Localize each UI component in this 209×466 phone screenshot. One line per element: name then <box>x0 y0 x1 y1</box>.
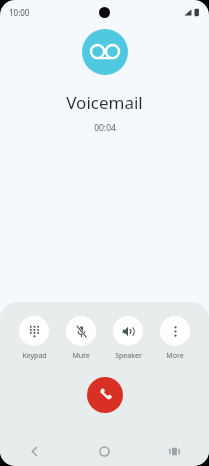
button[interactable]: More options <box>158 316 192 361</box>
button[interactable]: Back <box>0 436 69 466</box>
button[interactable]: Mute <box>64 316 98 361</box>
staticText: Keypad <box>22 351 47 361</box>
button[interactable]: Keypad <box>17 316 51 361</box>
staticText: Mute <box>72 351 90 361</box>
staticText: 00:04 <box>94 122 116 134</box>
other: Keypad <box>19 316 49 346</box>
button[interactable]: Speaker <box>111 316 145 361</box>
staticText: Voicemail <box>66 91 143 114</box>
staticText: 10:00 <box>9 7 30 18</box>
button[interactable]: Recents <box>139 436 209 466</box>
other: More options <box>160 316 190 346</box>
button[interactable]: Home <box>69 436 139 466</box>
other: Mute <box>66 316 96 346</box>
staticText: Speaker <box>115 351 142 361</box>
other: Speaker <box>113 316 143 346</box>
button[interactable]: End call <box>87 377 123 413</box>
staticText: More <box>166 351 184 361</box>
